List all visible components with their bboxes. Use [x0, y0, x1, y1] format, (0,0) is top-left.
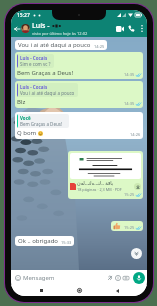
staticText: Luís - Cocais	[20, 84, 48, 90]
staticText: Luís -	[32, 21, 52, 31]
staticText: Bem Graças a Deus!	[17, 69, 74, 77]
staticText: Mensagem	[23, 274, 55, 282]
staticText: 14:35	[124, 101, 135, 106]
button[interactable]: Recents	[33, 285, 49, 296]
button[interactable]: Video call	[114, 20, 126, 37]
staticText: Ok .. obrigado	[18, 237, 58, 245]
staticText: Sim e com vc ?	[20, 61, 51, 67]
staticText: Vou i ai até daqui a pouco	[18, 41, 91, 49]
button[interactable]: Download	[134, 183, 141, 190]
staticText: 14:25	[94, 44, 105, 49]
button[interactable]: Você	[15, 112, 143, 139]
staticText: Q bom	[17, 129, 37, 137]
staticText: Luís - Cocais	[20, 55, 48, 61]
staticText: 14:35	[124, 72, 135, 77]
staticText: 15:27	[17, 12, 30, 19]
button[interactable]: Ok .. obrigado	[15, 236, 74, 246]
staticText: Blz	[17, 98, 26, 106]
button[interactable]: باقة ..ك..ه‌ك..له‌ن	[68, 151, 143, 199]
staticText: Bem Graças a Deus!	[20, 121, 63, 127]
staticText: 18 páginas · 2,3 MB · PDF	[77, 187, 122, 192]
button[interactable]: Voice message	[133, 272, 145, 284]
button[interactable]: Luís - Cocais	[15, 81, 143, 108]
staticText: Vou i ai até daqui a pouco	[20, 90, 75, 96]
button[interactable]: Profile photo	[21, 24, 30, 33]
staticText: visto por último hoje às 12:02	[32, 31, 88, 36]
staticText: 15:33	[61, 240, 72, 245]
staticText: 15:25	[124, 192, 135, 197]
button[interactable]: Scroll to bottom	[131, 248, 142, 259]
staticText: 15:25	[124, 225, 135, 230]
button[interactable]: More options	[137, 20, 146, 37]
button[interactable]: Luís - Cocais	[15, 52, 143, 79]
button[interactable]: Mensagem	[13, 272, 131, 284]
staticText: Você	[20, 115, 31, 121]
button[interactable]: Vou i ai até daqui a pouco	[15, 40, 107, 50]
button[interactable]: 15:25	[111, 221, 143, 231]
button[interactable]: Call	[126, 20, 137, 37]
staticText: باقة ..ك..ه‌ك..له‌ن	[77, 180, 114, 187]
button[interactable]: Back	[12, 20, 21, 37]
button[interactable]: Back	[109, 285, 125, 296]
button[interactable]: Home	[71, 285, 87, 296]
staticText: 14:26	[130, 132, 141, 137]
